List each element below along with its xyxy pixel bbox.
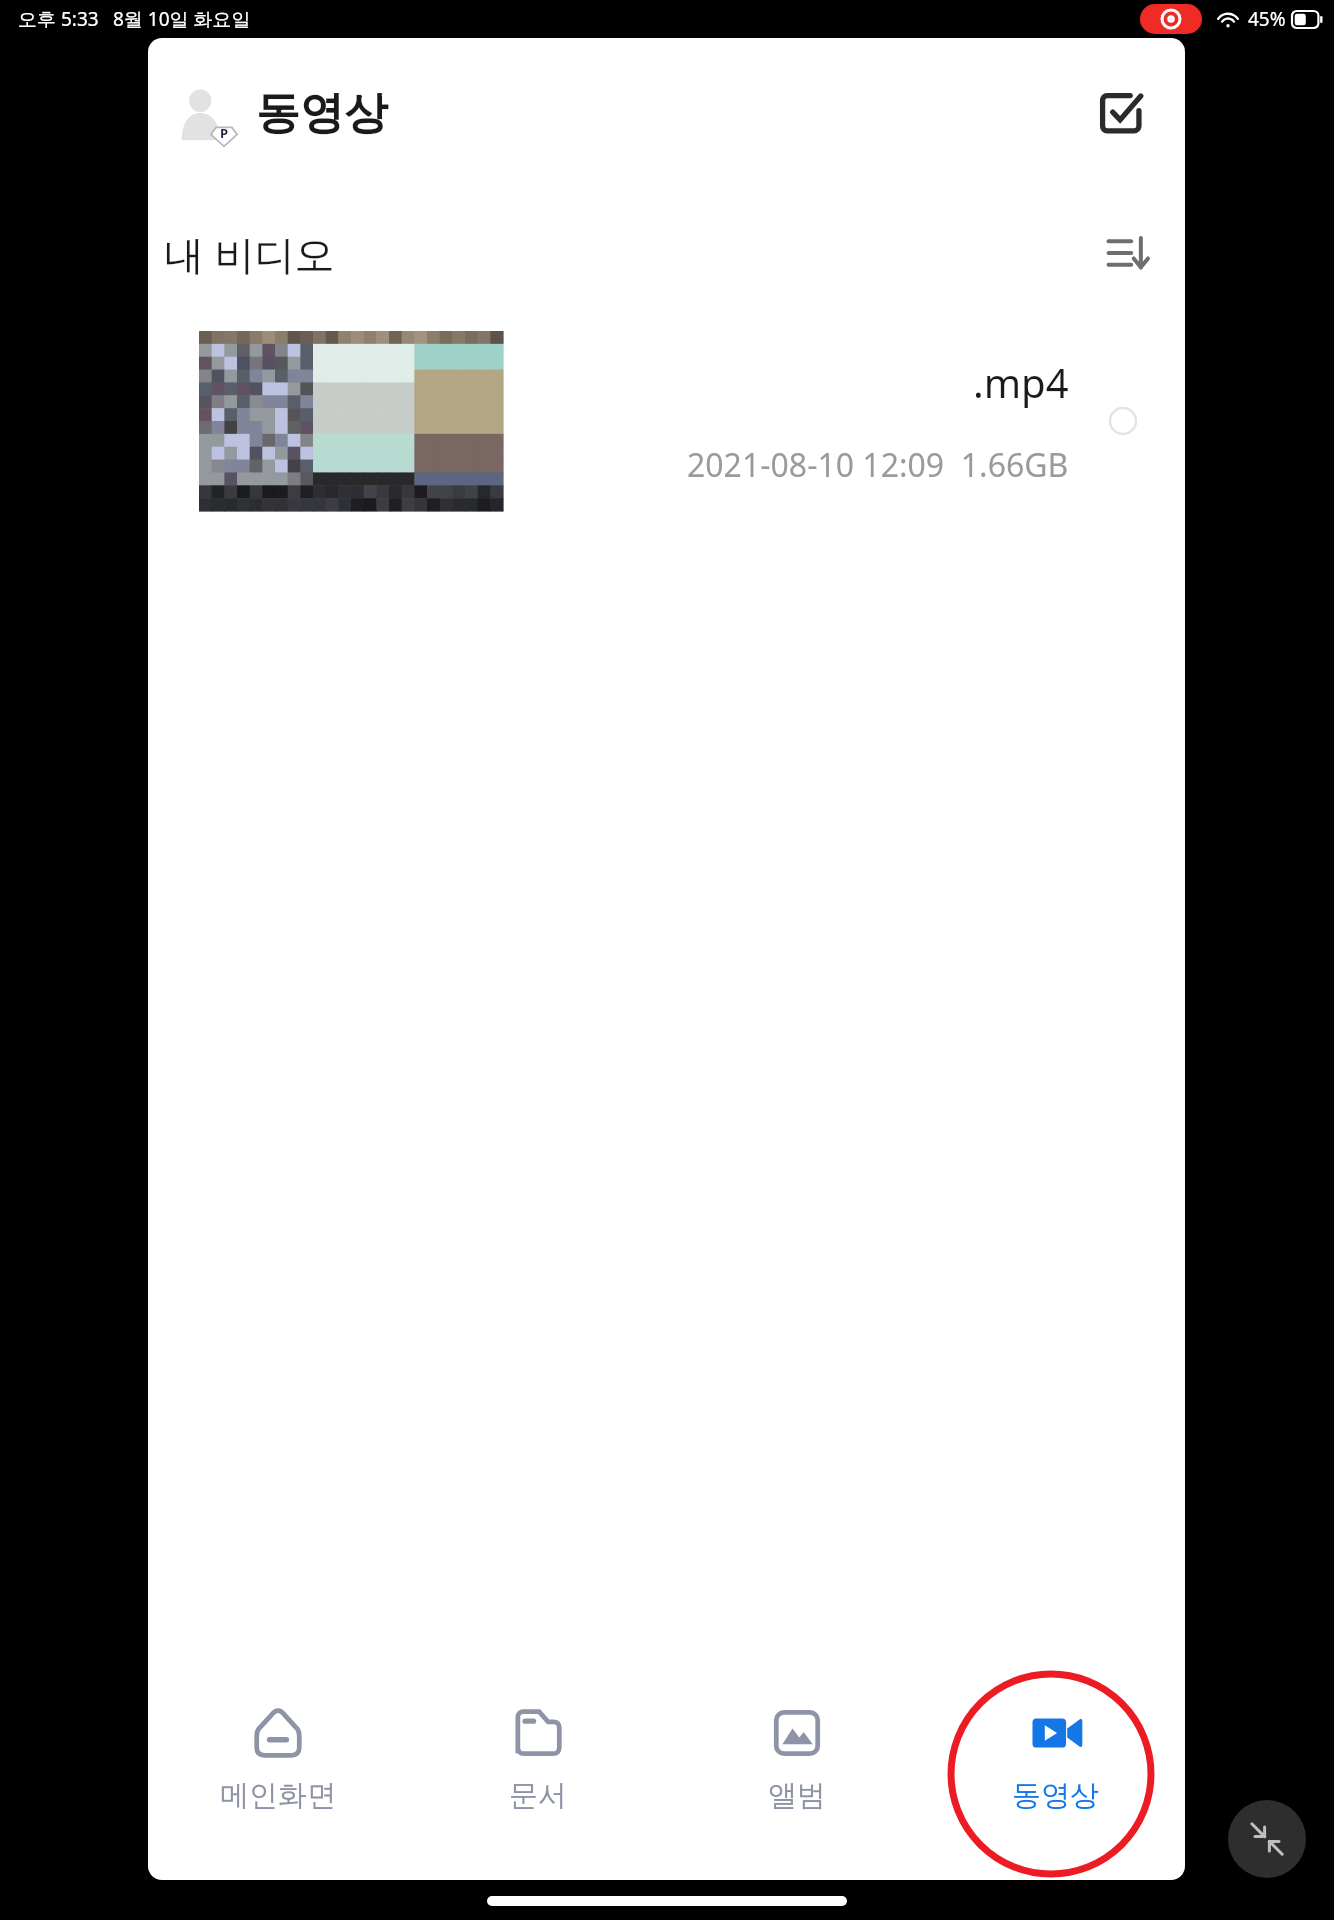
button[interactable]: Select video [1095, 393, 1151, 449]
staticText: 8월 10일 화요일 [113, 6, 251, 32]
button[interactable]: P [170, 77, 388, 149]
staticText: 45% [1248, 6, 1286, 32]
button[interactable]: 동영상 [926, 1680, 1185, 1838]
staticText: 문서 [509, 1777, 567, 1814]
button[interactable]: 앨범 [667, 1680, 926, 1838]
staticText: 동영상 [1012, 1777, 1099, 1814]
staticText: 동영상 [256, 86, 388, 141]
staticText: 오후 5:33 [18, 6, 99, 32]
button[interactable]: 메인화면 [148, 1680, 408, 1838]
staticText: 2021-08-10 12:09 1.66GB [687, 443, 1069, 487]
staticText: 메인화면 [220, 1777, 336, 1814]
staticText: 앨범 [768, 1777, 826, 1814]
button[interactable]: .mp4 [148, 318, 1185, 524]
button[interactable]: Sort [1093, 219, 1161, 287]
button[interactable]: 문서 [408, 1680, 667, 1838]
staticText: P [220, 124, 229, 142]
button[interactable]: Shrink window [1228, 1800, 1306, 1878]
staticText: .mp4 [973, 355, 1069, 409]
button[interactable]: Select items [1085, 77, 1157, 149]
staticText: 내 비디오 [164, 226, 335, 281]
